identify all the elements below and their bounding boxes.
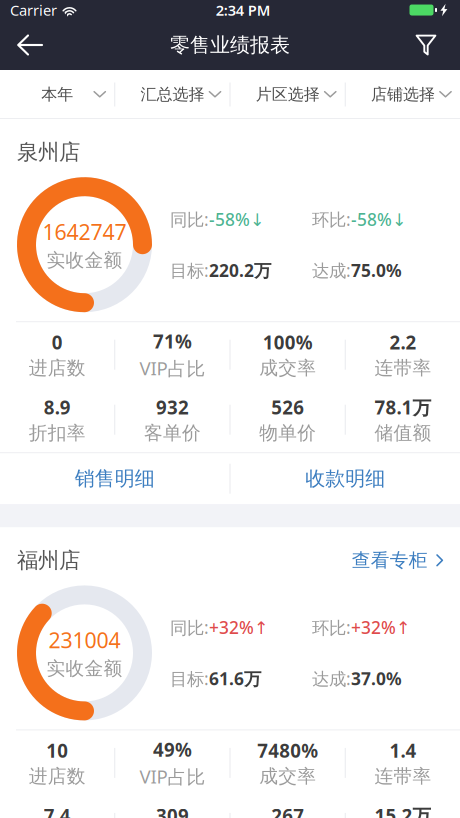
staticText: 成交率 xyxy=(259,765,316,788)
staticText: 成交率 xyxy=(259,357,316,379)
staticText: VIP占比 xyxy=(139,764,205,789)
staticText: 78.1万 xyxy=(374,395,431,420)
staticText: 37.0% xyxy=(351,667,402,690)
staticText: 客单价 xyxy=(144,422,201,444)
staticText: 同比: xyxy=(170,208,209,231)
staticText: 零售业绩报表 xyxy=(170,33,290,57)
staticText: 526 xyxy=(271,395,304,420)
staticText: 2.2 xyxy=(389,330,416,355)
staticText: 达成: xyxy=(312,667,351,690)
button[interactable]: Filter xyxy=(399,20,453,70)
staticText: 220.2万 xyxy=(209,259,271,282)
staticText: 同比: xyxy=(170,616,209,639)
staticText: 进店数 xyxy=(29,357,86,379)
button[interactable]: 销售明细 xyxy=(0,453,229,504)
staticText: 汇总选择 xyxy=(140,85,204,104)
staticText: VIP占比 xyxy=(139,356,205,381)
staticText: 片区选择 xyxy=(256,85,320,104)
button[interactable]: Back xyxy=(3,20,57,70)
staticText: +32%↑ xyxy=(351,616,411,639)
staticText: 进店数 xyxy=(29,765,86,788)
staticText: 目标: xyxy=(170,259,209,282)
staticText: 932 xyxy=(156,395,189,420)
staticText: 环比: xyxy=(312,208,351,231)
staticText: 储值额 xyxy=(374,422,431,444)
staticText: 查看专柜 xyxy=(352,549,428,572)
staticText: 连带率 xyxy=(374,765,431,788)
staticText: -58%↓ xyxy=(351,208,407,231)
button[interactable]: 本年 xyxy=(0,70,114,119)
staticText: 267 xyxy=(271,803,304,818)
staticText: 收款明细 xyxy=(305,466,385,491)
staticText: +32%↑ xyxy=(209,616,269,639)
staticText: 7480% xyxy=(257,738,318,763)
staticText: 折扣率 xyxy=(29,422,86,444)
button[interactable]: 查看专柜 xyxy=(352,549,443,572)
staticText: 本年 xyxy=(41,85,73,104)
staticText: 物单价 xyxy=(259,422,316,444)
button[interactable]: 店铺选择 xyxy=(346,70,460,119)
staticText: 环比: xyxy=(312,616,351,639)
staticText: -58%↓ xyxy=(209,208,265,231)
staticText: 10 xyxy=(46,738,68,763)
staticText: 0 xyxy=(52,330,63,355)
staticText: 8.9 xyxy=(44,395,71,420)
staticText: 实收金额 xyxy=(46,657,122,680)
staticText: 销售明细 xyxy=(75,466,155,491)
staticText: 2:34 PM xyxy=(216,0,271,20)
staticText: 309 xyxy=(156,803,189,818)
staticText: 达成: xyxy=(312,259,351,282)
staticText: 实收金额 xyxy=(46,249,122,272)
staticText: 71% xyxy=(153,329,192,354)
button[interactable]: 收款明细 xyxy=(230,453,460,504)
staticText: 15.2万 xyxy=(374,803,431,818)
staticText: 1642747 xyxy=(42,218,126,246)
staticText: 7.4 xyxy=(44,803,71,818)
staticText: Carrier xyxy=(10,0,57,20)
staticText: 61.6万 xyxy=(209,667,261,690)
staticText: 75.0% xyxy=(351,259,402,282)
staticText: 231004 xyxy=(48,626,120,654)
staticText: 福州店 xyxy=(17,547,80,573)
staticText: 泉州店 xyxy=(17,139,80,165)
staticText: 目标: xyxy=(170,667,209,690)
button[interactable]: 汇总选择 xyxy=(115,70,229,119)
staticText: 店铺选择 xyxy=(371,85,435,104)
staticText: 1.4 xyxy=(389,738,416,763)
staticText: 连带率 xyxy=(374,357,431,379)
staticText: 100% xyxy=(263,330,313,355)
staticText: 49% xyxy=(153,737,192,762)
button[interactable]: 片区选择 xyxy=(230,70,345,119)
